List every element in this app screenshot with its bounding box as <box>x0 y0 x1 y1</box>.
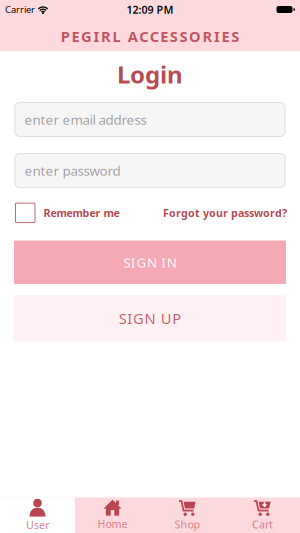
staticText: enter password <box>24 162 120 179</box>
button[interactable]: SIGN IN <box>14 241 286 284</box>
button[interactable]: Cart <box>225 497 300 533</box>
button[interactable]: Home <box>75 497 150 533</box>
staticText: 12:09 PM <box>126 2 173 17</box>
staticText: Forgot your password? <box>163 206 287 220</box>
button[interactable]: SIGN UP <box>14 295 286 342</box>
button[interactable]: User <box>0 497 75 533</box>
staticText: Shop <box>174 517 200 531</box>
staticText: Cart <box>252 517 273 531</box>
staticText: PEGIRL ACCESSORIES <box>61 26 239 46</box>
button[interactable]: Remember me <box>15 203 119 223</box>
staticText: Home <box>97 517 127 531</box>
staticText: User <box>26 518 49 532</box>
staticText: Login <box>117 58 183 90</box>
staticText: SIGN IN <box>123 253 177 271</box>
button[interactable]: enter password <box>14 153 285 188</box>
staticText: enter email address <box>24 111 146 128</box>
button[interactable]: Forgot your password? <box>163 206 287 220</box>
staticText: SIGN UP <box>119 309 181 328</box>
button[interactable]: Shop <box>150 497 225 533</box>
staticText: Carrier <box>5 3 35 16</box>
staticText: Remember me <box>43 206 119 220</box>
button[interactable]: enter email address <box>14 102 285 137</box>
